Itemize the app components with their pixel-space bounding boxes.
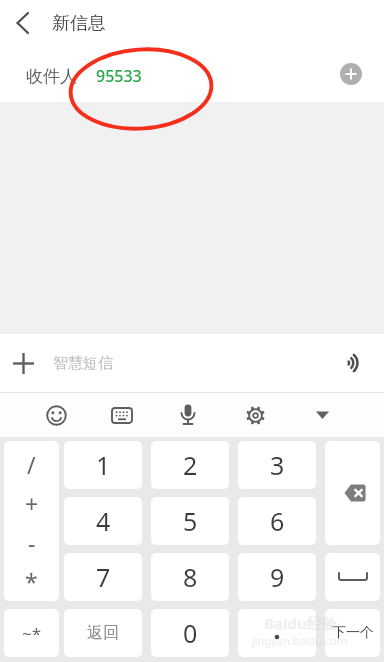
- button[interactable]: 下一个: [325, 609, 380, 657]
- button[interactable]: -: [4, 523, 59, 562]
- staticText: *: [25, 566, 38, 597]
- staticText: +: [25, 488, 39, 519]
- button[interactable]: 1: [64, 441, 142, 489]
- button[interactable]: 3: [238, 441, 316, 489]
- button[interactable]: 6: [238, 497, 316, 545]
- staticText: 4: [96, 504, 111, 538]
- button[interactable]: 0: [151, 609, 229, 657]
- staticText: 返回: [87, 623, 119, 643]
- staticText: 智慧短信: [53, 354, 113, 373]
- button[interactable]: /: [4, 445, 59, 484]
- button[interactable]: [325, 441, 380, 545]
- button[interactable]: [300, 393, 344, 437]
- button[interactable]: 9: [238, 553, 316, 601]
- button[interactable]: [34, 393, 78, 437]
- staticText: 9: [270, 560, 285, 594]
- staticText: 7: [96, 560, 111, 594]
- staticText: -: [28, 527, 36, 558]
- staticText: Baidu经验: [264, 613, 337, 633]
- staticText: 95533: [96, 65, 142, 87]
- button[interactable]: [100, 393, 144, 437]
- button[interactable]: [0, 1, 44, 45]
- staticText: 6: [270, 504, 285, 538]
- staticText: 新信息: [52, 12, 106, 35]
- button[interactable]: 8: [151, 553, 229, 601]
- staticText: 3: [270, 448, 285, 482]
- staticText: ~*: [22, 622, 42, 645]
- staticText: 下一个: [332, 624, 374, 642]
- staticText: 5: [183, 504, 198, 538]
- staticText: jingyan.baidu.com: [252, 633, 348, 648]
- button[interactable]: [0, 340, 46, 386]
- button[interactable]: [329, 52, 373, 96]
- staticText: 1: [96, 448, 111, 482]
- staticText: 收件人: [26, 66, 77, 87]
- button[interactable]: [166, 393, 210, 437]
- button[interactable]: 7: [64, 553, 142, 601]
- button[interactable]: [332, 340, 378, 386]
- button[interactable]: ~*: [4, 609, 59, 657]
- button[interactable]: 5: [151, 497, 229, 545]
- button[interactable]: +: [4, 484, 59, 523]
- button[interactable]: 智慧短信: [53, 354, 332, 373]
- button[interactable]: *: [4, 562, 59, 601]
- staticText: 2: [183, 448, 198, 482]
- button[interactable]: 2: [151, 441, 229, 489]
- staticText: 8: [183, 560, 198, 594]
- button[interactable]: 收件人: [0, 46, 384, 102]
- button[interactable]: [233, 393, 277, 437]
- button[interactable]: [325, 553, 380, 601]
- staticText: /: [27, 449, 36, 480]
- button[interactable]: [238, 609, 316, 657]
- staticText: 0: [183, 616, 198, 650]
- button[interactable]: 返回: [64, 609, 142, 657]
- button[interactable]: 4: [64, 497, 142, 545]
